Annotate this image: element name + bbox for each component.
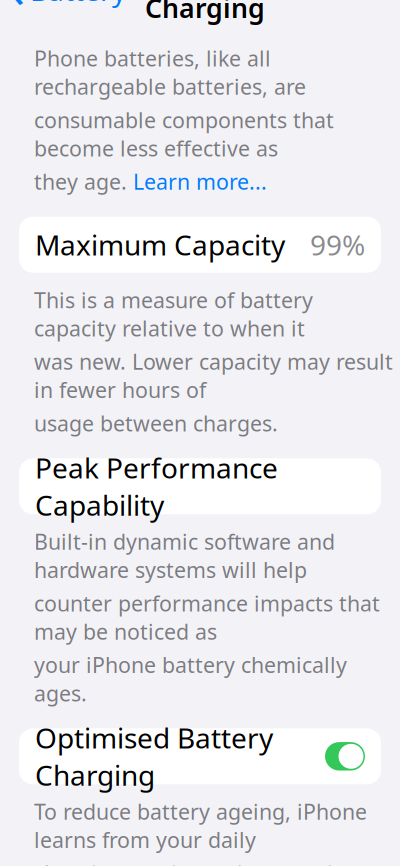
staticText: consumable components that become less e… — [34, 106, 334, 162]
staticText: This is a measure of battery capacity re… — [34, 286, 313, 342]
staticText: was new. Lower capacity may result in fe… — [34, 347, 393, 404]
staticText: Learn more... — [133, 167, 267, 196]
button[interactable]: Learn more... — [133, 167, 267, 196]
staticText: To reduce battery ageing, iPhone learns … — [34, 797, 367, 854]
staticText: they age. — [34, 167, 133, 196]
button[interactable]: Maximum Capacity — [19, 217, 381, 273]
button[interactable]: Optimised Battery Charging — [19, 728, 381, 784]
staticText: Peak Performance Capability — [35, 449, 278, 524]
button[interactable]: Peak Performance Capability — [19, 458, 381, 514]
staticText: 99% — [310, 226, 365, 263]
staticText: Maximum Capacity — [35, 226, 285, 263]
staticText: Phone batteries, like all rechargeable b… — [34, 44, 306, 101]
staticText: your iPhone battery chemically ages. — [34, 651, 347, 707]
staticText: usage between charges. — [34, 409, 278, 437]
staticText: Battery Health & Charging — [145, 0, 366, 25]
staticText: Battery — [30, 0, 126, 9]
staticText: Built-in dynamic software and hardware s… — [34, 527, 335, 584]
button[interactable]: ‹ — [0, 0, 126, 24]
staticText: Optimised Battery Charging — [35, 719, 273, 793]
staticText: counter performance impacts that may be … — [34, 589, 380, 646]
staticText: ‹ — [10, 0, 25, 20]
